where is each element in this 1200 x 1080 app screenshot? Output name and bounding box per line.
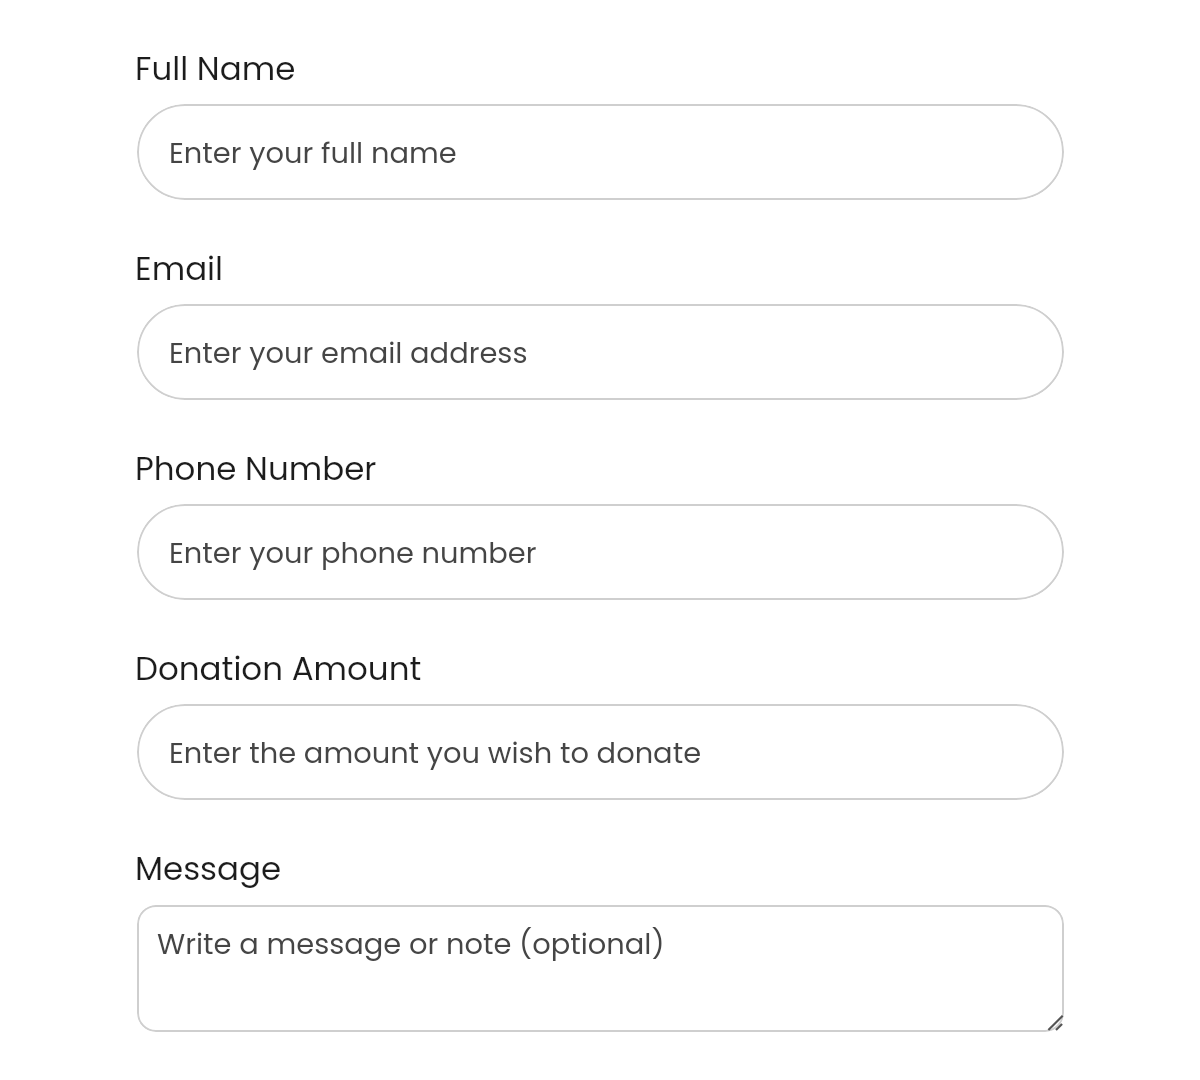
button[interactable]: Write a message or note (optional) [137,905,1064,1032]
button[interactable]: Enter your full name [137,104,1064,200]
staticText: Enter the amount you wish to donate [169,733,702,773]
button[interactable]: Enter your phone number [137,504,1064,600]
staticText: Enter your full name [169,133,457,173]
staticText: Write a message or note (optional) [157,924,665,964]
staticText: Enter your email address [169,333,528,373]
button[interactable]: Enter your email address [137,304,1064,400]
staticText: Donation Amount [135,646,422,692]
button[interactable]: Resize message field [1044,1010,1068,1034]
staticText: Phone Number [135,446,377,492]
staticText: Full Name [135,46,296,92]
staticText: Email [135,246,224,292]
staticText: Enter your phone number [169,533,537,573]
button[interactable]: Enter the amount you wish to donate [137,704,1064,800]
staticText: Message [135,846,282,892]
